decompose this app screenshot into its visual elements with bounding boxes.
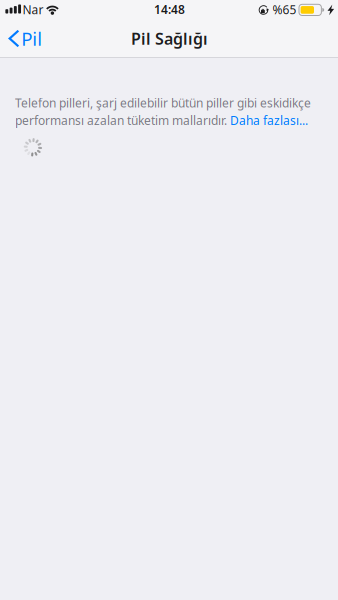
staticText: Nar <box>22 1 43 17</box>
staticText: performansı azalan tüketim mallarıdır. <box>15 112 227 128</box>
staticText: Pil <box>21 26 42 51</box>
staticText: 14:48 <box>154 1 185 17</box>
staticText: Pil Sağlığı <box>131 28 208 49</box>
staticText: Daha fazlası... <box>230 112 308 128</box>
button[interactable]: Daha fazlası... <box>230 112 308 128</box>
button[interactable]: Pil <box>0 20 76 57</box>
staticText: Telefon pilleri, şarj edilebilir bütün p… <box>15 95 311 111</box>
staticText: %65 <box>272 1 296 17</box>
